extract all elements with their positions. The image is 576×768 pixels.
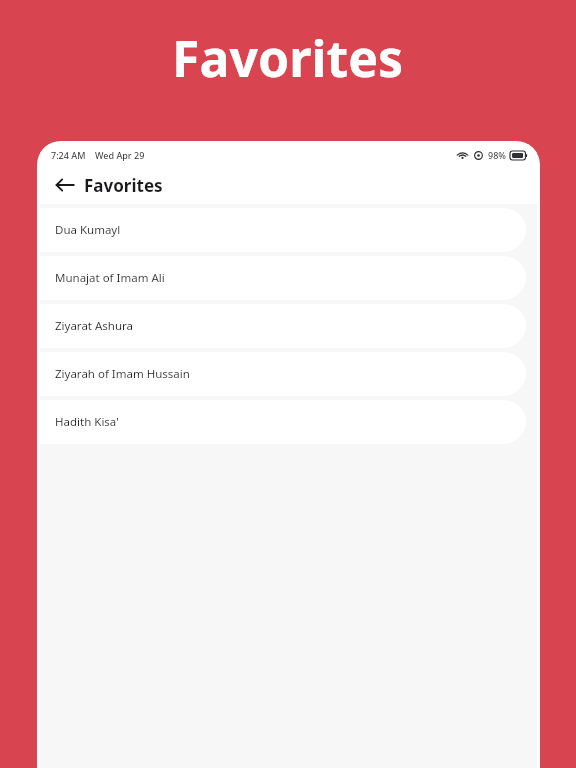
staticText: Wed Apr 29: [95, 149, 145, 161]
staticText: Ziyarat Ashura: [55, 318, 134, 334]
button[interactable]: Dua Kumayl: [40, 208, 526, 252]
staticText: Munajat of Imam Ali: [55, 270, 165, 286]
staticText: Hadith Kisa': [55, 414, 119, 430]
button[interactable]: Munajat of Imam Ali: [40, 256, 526, 300]
button[interactable]: Ziyarah of Imam Hussain: [40, 352, 526, 396]
staticText: Favorites: [172, 24, 404, 92]
staticText: 7:24 AM: [51, 149, 86, 161]
staticText: Ziyarah of Imam Hussain: [55, 366, 190, 382]
button[interactable]: Back: [49, 169, 81, 201]
staticText: 98%: [488, 149, 506, 161]
staticText: Favorites: [84, 174, 163, 197]
button[interactable]: Ziyarat Ashura: [40, 304, 526, 348]
button[interactable]: Hadith Kisa': [40, 400, 526, 444]
staticText: Dua Kumayl: [55, 222, 121, 238]
